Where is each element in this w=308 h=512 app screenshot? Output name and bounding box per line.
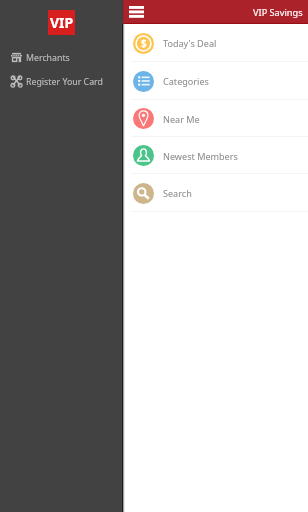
button[interactable]: Near Me bbox=[123, 100, 308, 137]
button[interactable]: Newest Members bbox=[123, 137, 308, 174]
staticText: Register Your Card bbox=[26, 76, 103, 88]
staticText: VIP Savings bbox=[253, 6, 303, 19]
button[interactable]: Register Your Card bbox=[0, 70, 122, 92]
button[interactable]: Open navigation drawer bbox=[129, 6, 144, 18]
staticText: Merchants bbox=[26, 52, 70, 64]
button[interactable]: $ bbox=[123, 24, 308, 62]
staticText: $ bbox=[141, 37, 147, 50]
staticText: Search bbox=[163, 187, 192, 199]
button[interactable]: Search bbox=[123, 174, 308, 212]
button[interactable]: Merchants bbox=[0, 46, 122, 68]
staticText: Categories bbox=[163, 75, 209, 87]
button[interactable]: Categories bbox=[123, 62, 308, 100]
staticText: VIP bbox=[50, 13, 74, 32]
staticText: Newest Members bbox=[163, 150, 238, 162]
staticText: Today's Deal bbox=[163, 37, 217, 49]
staticText: Near Me bbox=[163, 113, 200, 125]
